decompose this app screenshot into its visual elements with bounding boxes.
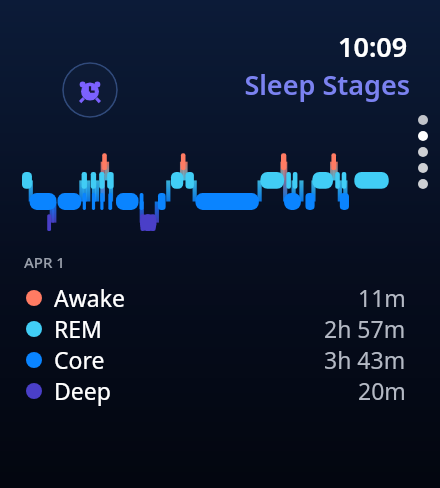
staticText: 11m bbox=[358, 282, 406, 313]
staticText: REM bbox=[54, 313, 102, 344]
staticText: Deep bbox=[54, 375, 111, 406]
staticText: APR 1 bbox=[24, 252, 65, 272]
button[interactable]: Alarm bbox=[62, 62, 118, 118]
button[interactable]: Deep bbox=[0, 375, 440, 406]
button[interactable]: Core bbox=[0, 344, 440, 375]
staticText: 20m bbox=[358, 375, 406, 406]
staticText: 3h 43m bbox=[324, 344, 406, 375]
staticText: Sleep Stages bbox=[244, 66, 410, 103]
staticText: 2h 57m bbox=[324, 313, 406, 344]
staticText: Awake bbox=[54, 282, 125, 313]
button[interactable]: REM bbox=[0, 313, 440, 344]
staticText: Core bbox=[54, 344, 105, 375]
staticText: 10:09 bbox=[338, 28, 408, 65]
button[interactable]: Awake bbox=[0, 282, 440, 313]
